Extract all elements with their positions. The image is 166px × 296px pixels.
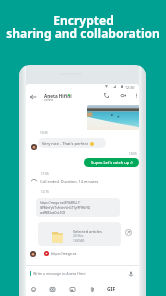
staticText: 12:30 xyxy=(125,85,135,90)
staticText: Super. Let's catch up :) xyxy=(91,160,133,165)
staticText: 12:15 xyxy=(41,190,49,194)
staticText: 10:55 xyxy=(129,152,137,156)
button[interactable]: Stickers xyxy=(48,285,56,293)
button[interactable]: Send image xyxy=(68,285,76,293)
button[interactable]: More options xyxy=(131,90,139,100)
staticText: 11:05 xyxy=(41,172,49,176)
staticText: Call ended. Duration: 14 minutes xyxy=(40,179,99,184)
button[interactable]: Call xyxy=(101,90,111,100)
button[interactable]: Call ended. Duration: 14 minutes xyxy=(31,178,99,184)
staticText: 10:35 xyxy=(40,131,48,135)
button[interactable]: Video call xyxy=(118,90,128,100)
button[interactable]: Selected articles xyxy=(38,222,121,246)
staticText: 148 MB xyxy=(73,239,85,243)
button[interactable]: Emoji xyxy=(29,285,37,293)
staticText: Write a message to Aneta Hrini xyxy=(33,271,86,276)
staticText: online xyxy=(44,98,54,102)
button[interactable]: Very nice - That's perfect xyxy=(38,138,106,148)
staticText: 20 files xyxy=(73,234,84,238)
button[interactable]: https://mega.nz/#!9kBRLL1! lWMmFyV7sFrdn… xyxy=(36,198,120,217)
button[interactable]: Write a message to Aneta Hrini xyxy=(26,265,139,282)
button[interactable]: Super. Let's catch up :) xyxy=(84,158,139,167)
button[interactable]: Download xyxy=(125,229,132,236)
staticText: GIF xyxy=(107,286,116,293)
button[interactable]: GIF xyxy=(106,286,117,293)
button[interactable]: https://mega.nz xyxy=(44,251,77,256)
staticText: Aneta Hiřiní xyxy=(44,93,72,99)
button[interactable]: Photo message xyxy=(87,105,139,130)
button[interactable]: Voice message xyxy=(126,269,135,278)
staticText: Very nice - That's perfect xyxy=(42,141,88,146)
staticText: https://mega.nz xyxy=(51,251,77,256)
button[interactable]: Back xyxy=(28,92,38,102)
staticText: https://mega.nz/#!9kBRLL1! lWMmFyV7sFrdn… xyxy=(40,201,91,215)
button[interactable]: Attach file xyxy=(88,285,96,293)
staticText: Encrypted xyxy=(53,12,114,28)
staticText: Selected articles xyxy=(73,229,102,234)
staticText: sharing and collaboration xyxy=(6,25,160,41)
